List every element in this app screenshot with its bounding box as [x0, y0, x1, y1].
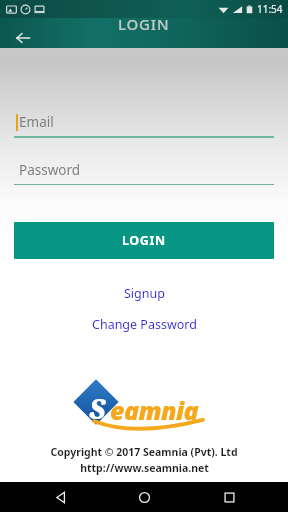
- button[interactable]: Back: [10, 25, 36, 51]
- staticText: Signup: [124, 285, 165, 302]
- staticText: 11:54: [257, 2, 283, 16]
- staticText: LOGIN: [122, 232, 166, 249]
- staticText: Email: [19, 113, 54, 131]
- button[interactable]: Signup: [0, 283, 288, 303]
- staticText: eamnia: [110, 393, 199, 427]
- staticText: Password: [19, 161, 81, 179]
- staticText: http://www.seamnia.net: [80, 461, 209, 475]
- button[interactable]: Password: [14, 160, 274, 186]
- staticText: LOGIN: [118, 14, 170, 34]
- button[interactable]: LOGIN: [14, 222, 274, 259]
- button[interactable]: Home: [119, 482, 169, 512]
- button[interactable]: Email: [14, 112, 274, 138]
- staticText: S: [89, 390, 106, 427]
- button[interactable]: Change Password: [0, 314, 288, 334]
- button[interactable]: Recent apps: [204, 482, 254, 512]
- staticText: Copyright © 2017 Seamnia (Pvt). Ltd: [50, 445, 238, 459]
- staticText: Change Password: [92, 316, 197, 333]
- button[interactable]: Back: [35, 482, 85, 512]
